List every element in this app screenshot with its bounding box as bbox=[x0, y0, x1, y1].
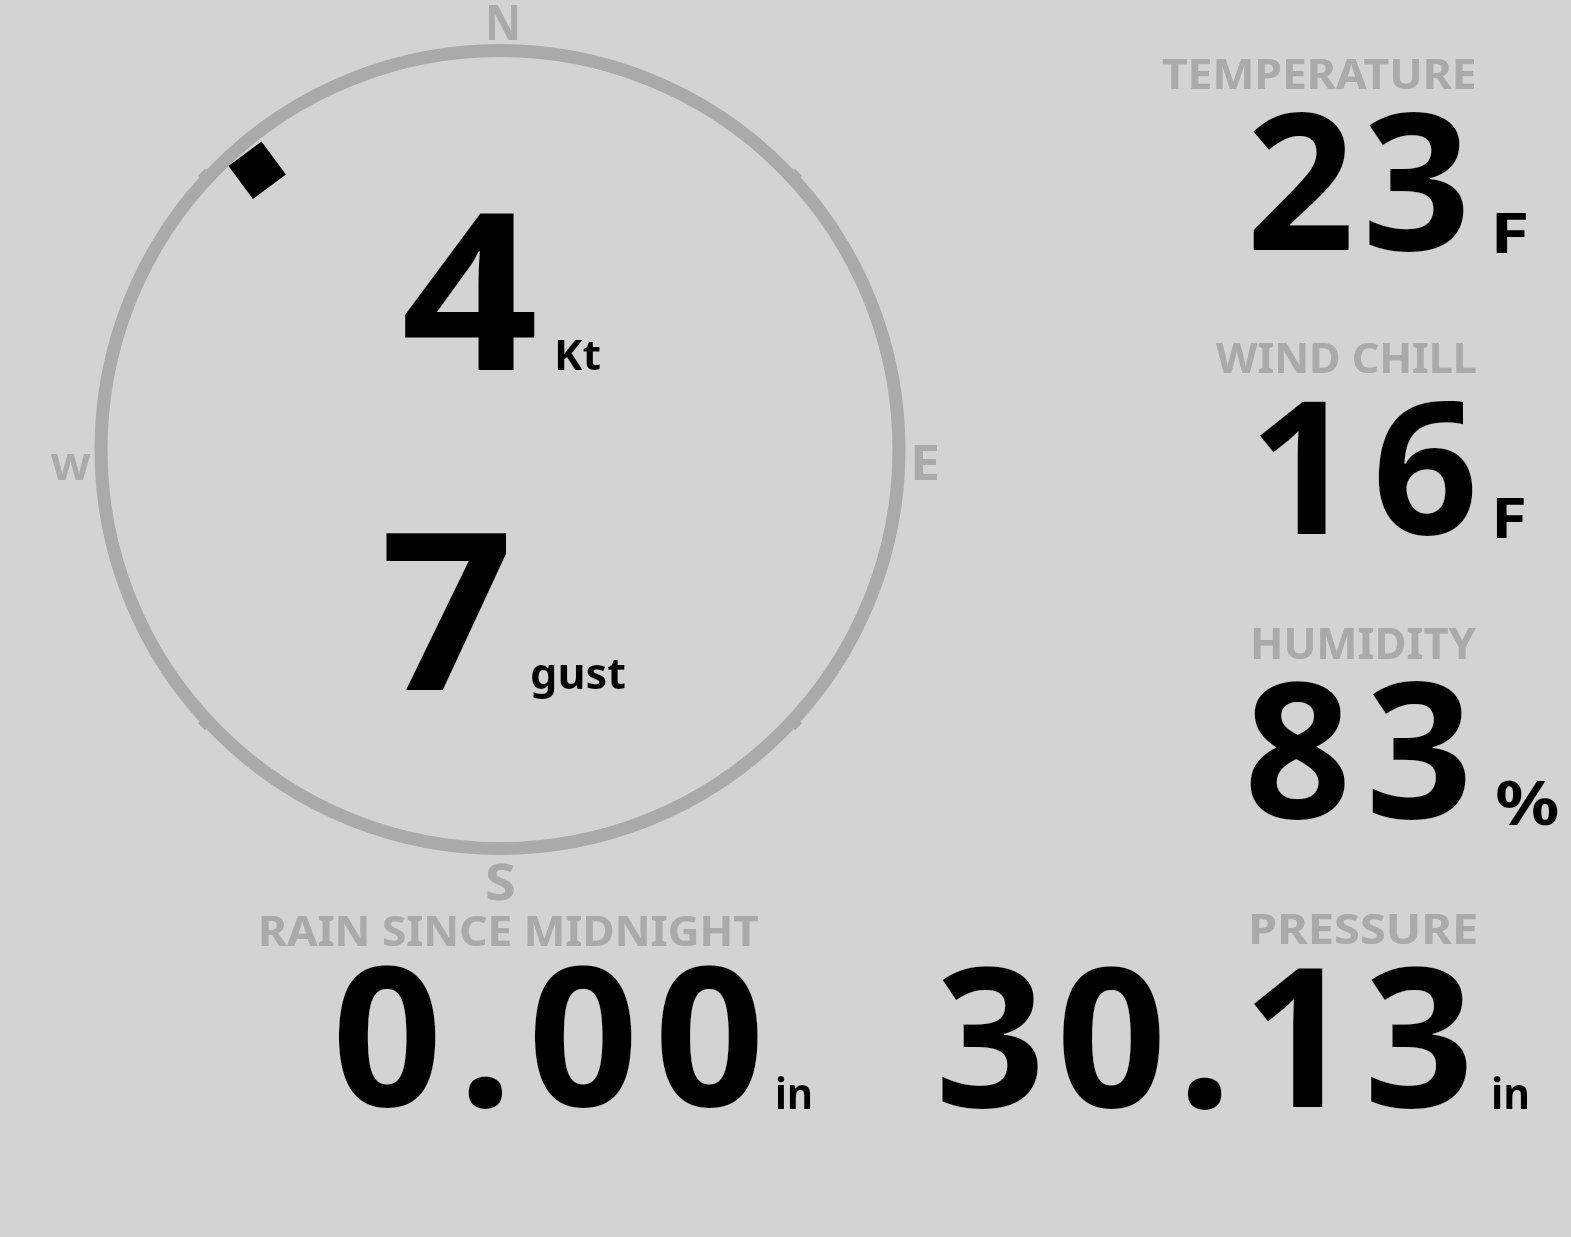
staticText: W bbox=[51, 441, 91, 491]
button[interactable]: Temperature 23 F bbox=[1150, 40, 1570, 280]
button[interactable]: Pressure 30.13 in bbox=[900, 895, 1570, 1125]
staticText: WIND CHILL bbox=[1216, 329, 1477, 385]
staticText: in bbox=[1491, 1063, 1531, 1122]
staticText: E bbox=[910, 428, 941, 495]
staticText: HUMIDITY bbox=[1250, 613, 1476, 672]
staticText: % bbox=[1495, 760, 1560, 843]
staticText: F bbox=[1491, 478, 1527, 554]
button[interactable]: Humidity 83 percent bbox=[1150, 605, 1570, 845]
staticText: F bbox=[1490, 195, 1529, 269]
staticText: 30.13 bbox=[935, 901, 1485, 1164]
button[interactable]: Wind chill 16 F bbox=[1150, 320, 1570, 560]
staticText: 4 bbox=[401, 135, 539, 435]
staticText: gust bbox=[530, 642, 627, 702]
staticText: Kt bbox=[554, 325, 602, 382]
staticText: PRESSURE bbox=[1248, 900, 1479, 956]
staticText: S bbox=[485, 847, 516, 915]
button[interactable]: Wind compass, 4 knots gusting 7 bbox=[95, 44, 907, 856]
staticText: 0.00 bbox=[332, 900, 781, 1163]
staticText: RAIN SINCE MIDNIGHT bbox=[258, 902, 759, 958]
staticText: 16 bbox=[1249, 336, 1496, 589]
button[interactable]: Rain since midnight 0.00 in bbox=[230, 895, 850, 1125]
staticText: 23 bbox=[1246, 46, 1479, 306]
staticText: N bbox=[485, 0, 521, 55]
staticText: TEMPERATURE bbox=[1162, 44, 1477, 101]
staticText: 83 bbox=[1244, 617, 1487, 873]
staticText: in bbox=[775, 1063, 814, 1122]
staticText: 7 bbox=[380, 455, 514, 755]
